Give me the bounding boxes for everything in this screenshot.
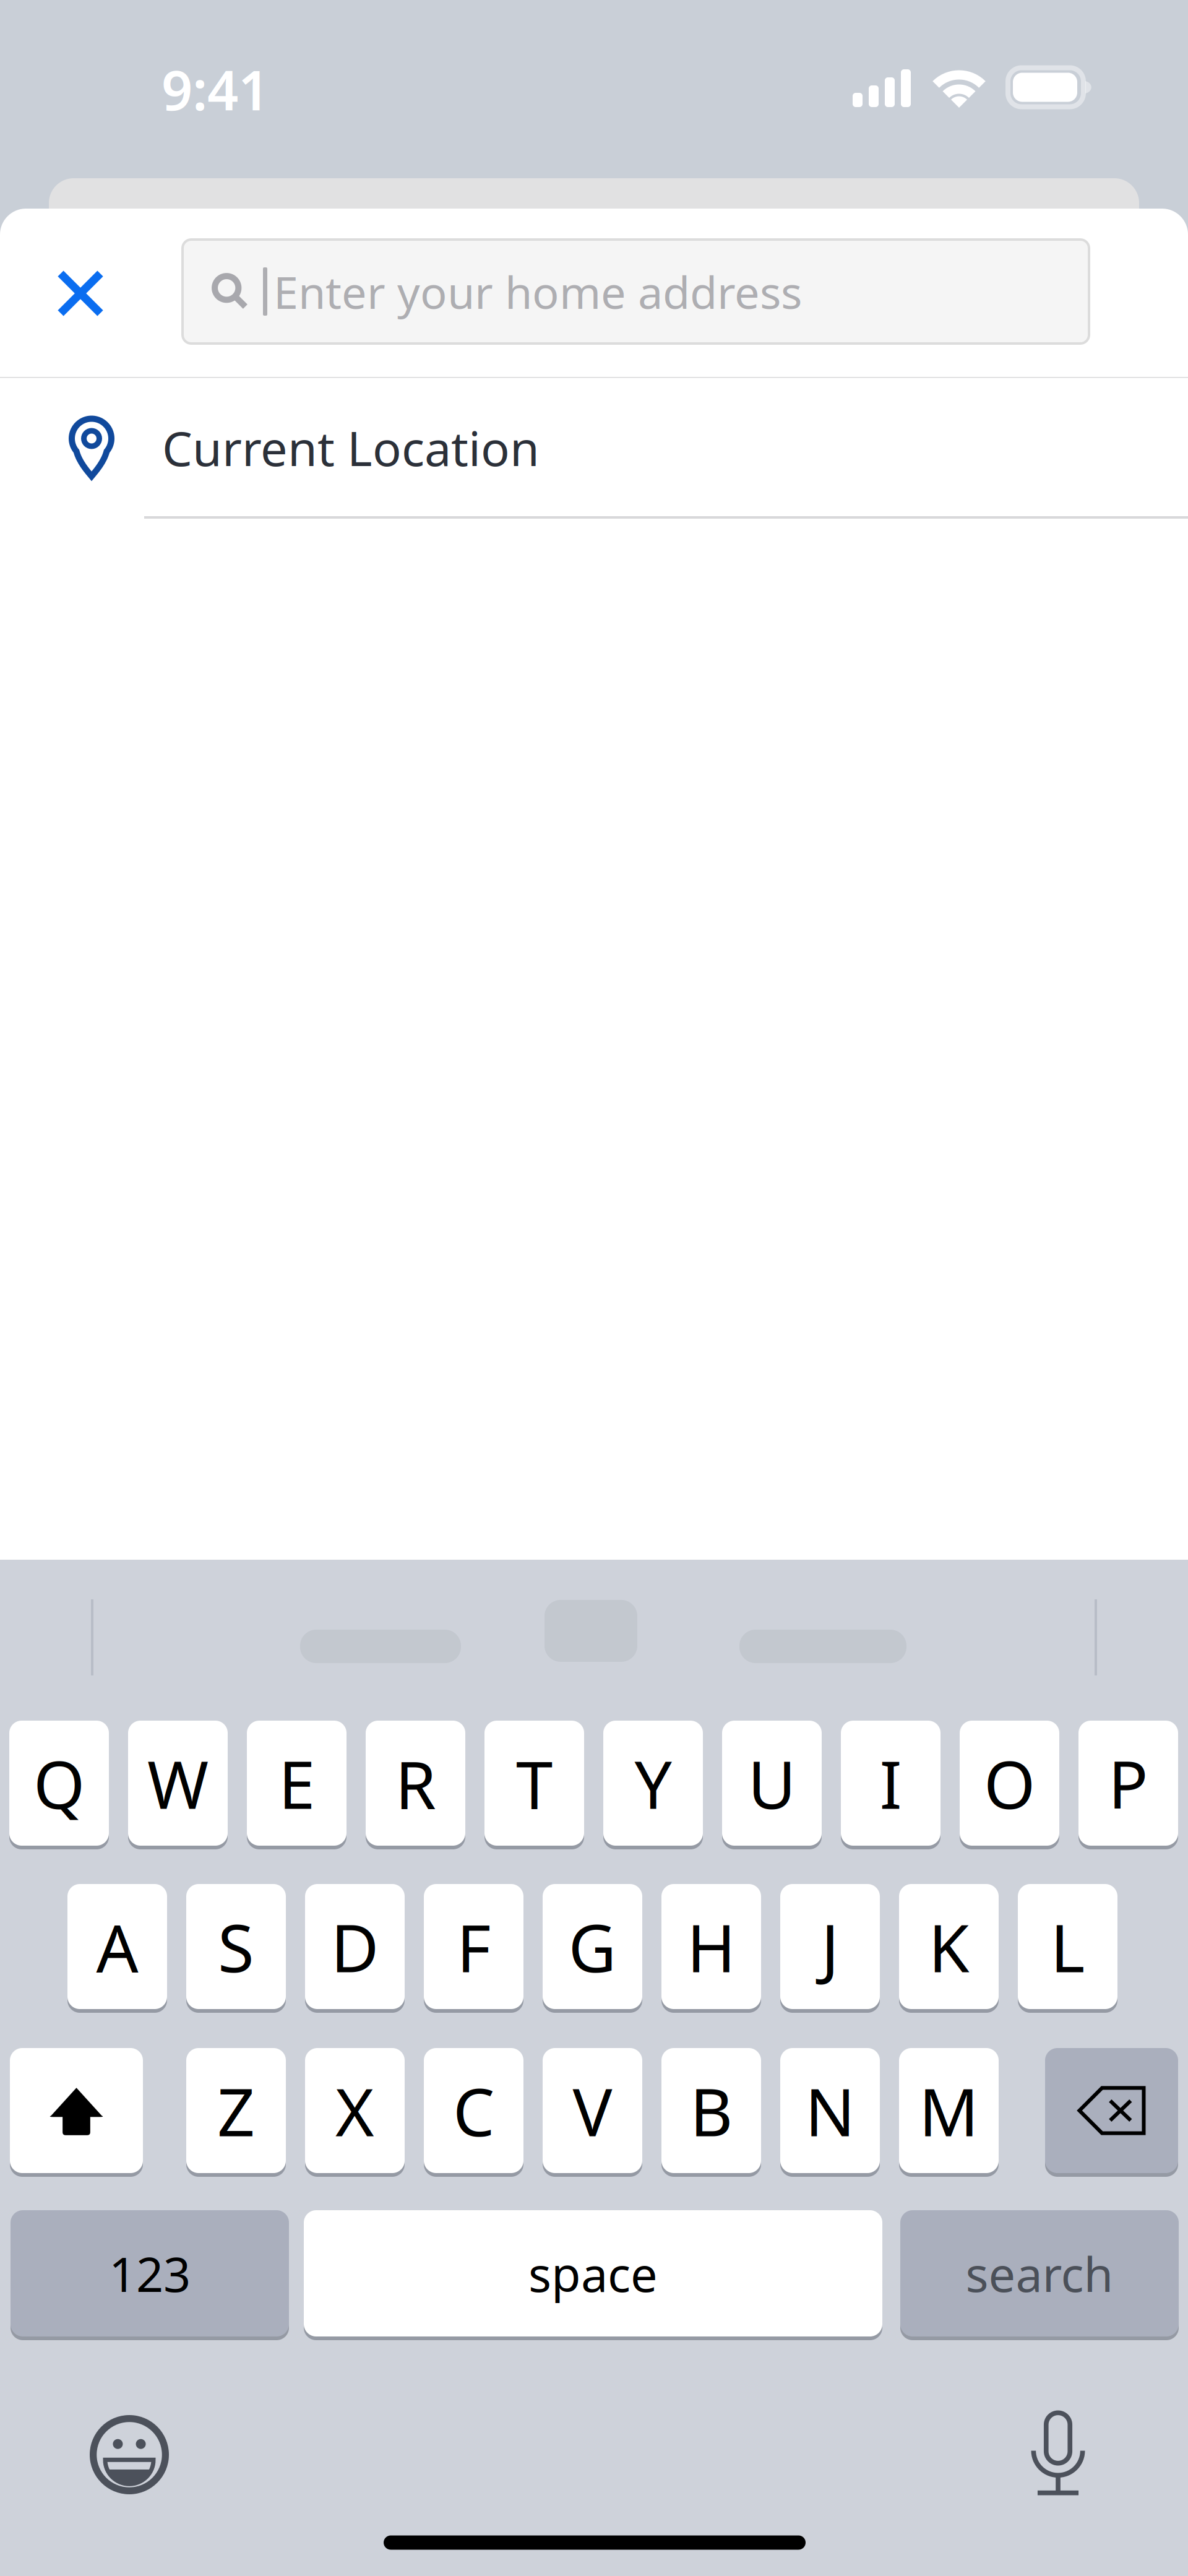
staticText: K [928,1903,969,1990]
staticText: S [218,1903,254,1990]
button[interactable]: space [304,2210,882,2336]
button[interactable]: search [900,2210,1179,2336]
staticText: O [984,1739,1035,1827]
button[interactable]: Z [186,2048,286,2173]
button[interactable]: K [899,1884,999,2009]
button[interactable]: U [722,1721,822,1846]
button[interactable]: H [661,1884,761,2009]
staticText: Enter your home address [273,262,802,321]
button[interactable]: Q [9,1721,109,1846]
button[interactable]: Y [603,1721,703,1846]
button[interactable]: F [424,1884,523,2009]
staticText: L [1050,1903,1085,1990]
staticText: J [821,1903,839,1990]
staticText: R [395,1739,436,1827]
button[interactable]: T [484,1721,584,1846]
button[interactable]: V [543,2048,642,2173]
staticText: space [528,2242,658,2305]
button[interactable]: P [1078,1721,1178,1846]
button[interactable]: M [899,2048,999,2173]
staticText: 123 [109,2242,191,2305]
staticText: F [457,1903,491,1990]
staticText: E [278,1739,315,1827]
button[interactable]: G [543,1884,642,2009]
button[interactable]: W [128,1721,228,1846]
staticText: 9:41 [161,53,269,125]
button[interactable]: X [305,2048,405,2173]
button[interactable]: Enter your home address [183,240,1089,344]
button[interactable]: S [186,1884,286,2009]
button[interactable]: Current Location [0,378,1188,517]
staticText: M [919,2067,979,2154]
button[interactable]: Emoji [90,2415,169,2494]
staticText: U [748,1739,796,1827]
staticText: D [331,1903,379,1990]
staticText: A [96,1903,138,1990]
button[interactable]: J [780,1884,880,2009]
staticText: Z [217,2067,255,2154]
button[interactable]: Delete [1045,2048,1178,2173]
button[interactable]: C [424,2048,523,2173]
button[interactable]: A [67,1884,167,2009]
button[interactable]: Dictation [1031,2410,1085,2495]
button[interactable]: I [841,1721,940,1846]
staticText: T [516,1739,553,1827]
staticText: I [880,1739,902,1827]
staticText: V [573,2067,612,2154]
button[interactable]: D [305,1884,405,2009]
staticText: X [335,2067,374,2154]
staticText: Y [635,1739,672,1827]
staticText: P [1108,1739,1148,1827]
staticText: C [453,2067,494,2154]
button[interactable]: Numbers [11,2210,289,2336]
staticText: Q [33,1739,85,1827]
staticText: H [687,1903,736,1990]
staticText: G [568,1903,617,1990]
staticText: N [805,2067,855,2154]
button[interactable]: L [1018,1884,1117,2009]
button[interactable]: B [661,2048,761,2173]
button[interactable]: E [247,1721,346,1846]
button[interactable]: N [780,2048,880,2173]
button[interactable]: Close [34,247,127,340]
button[interactable]: R [366,1721,465,1846]
button[interactable]: Shift [10,2048,143,2173]
staticText: W [147,1739,209,1827]
staticText: B [690,2067,733,2154]
button[interactable]: O [960,1721,1059,1846]
staticText: Current Location [162,416,540,479]
staticText: search [966,2242,1113,2305]
